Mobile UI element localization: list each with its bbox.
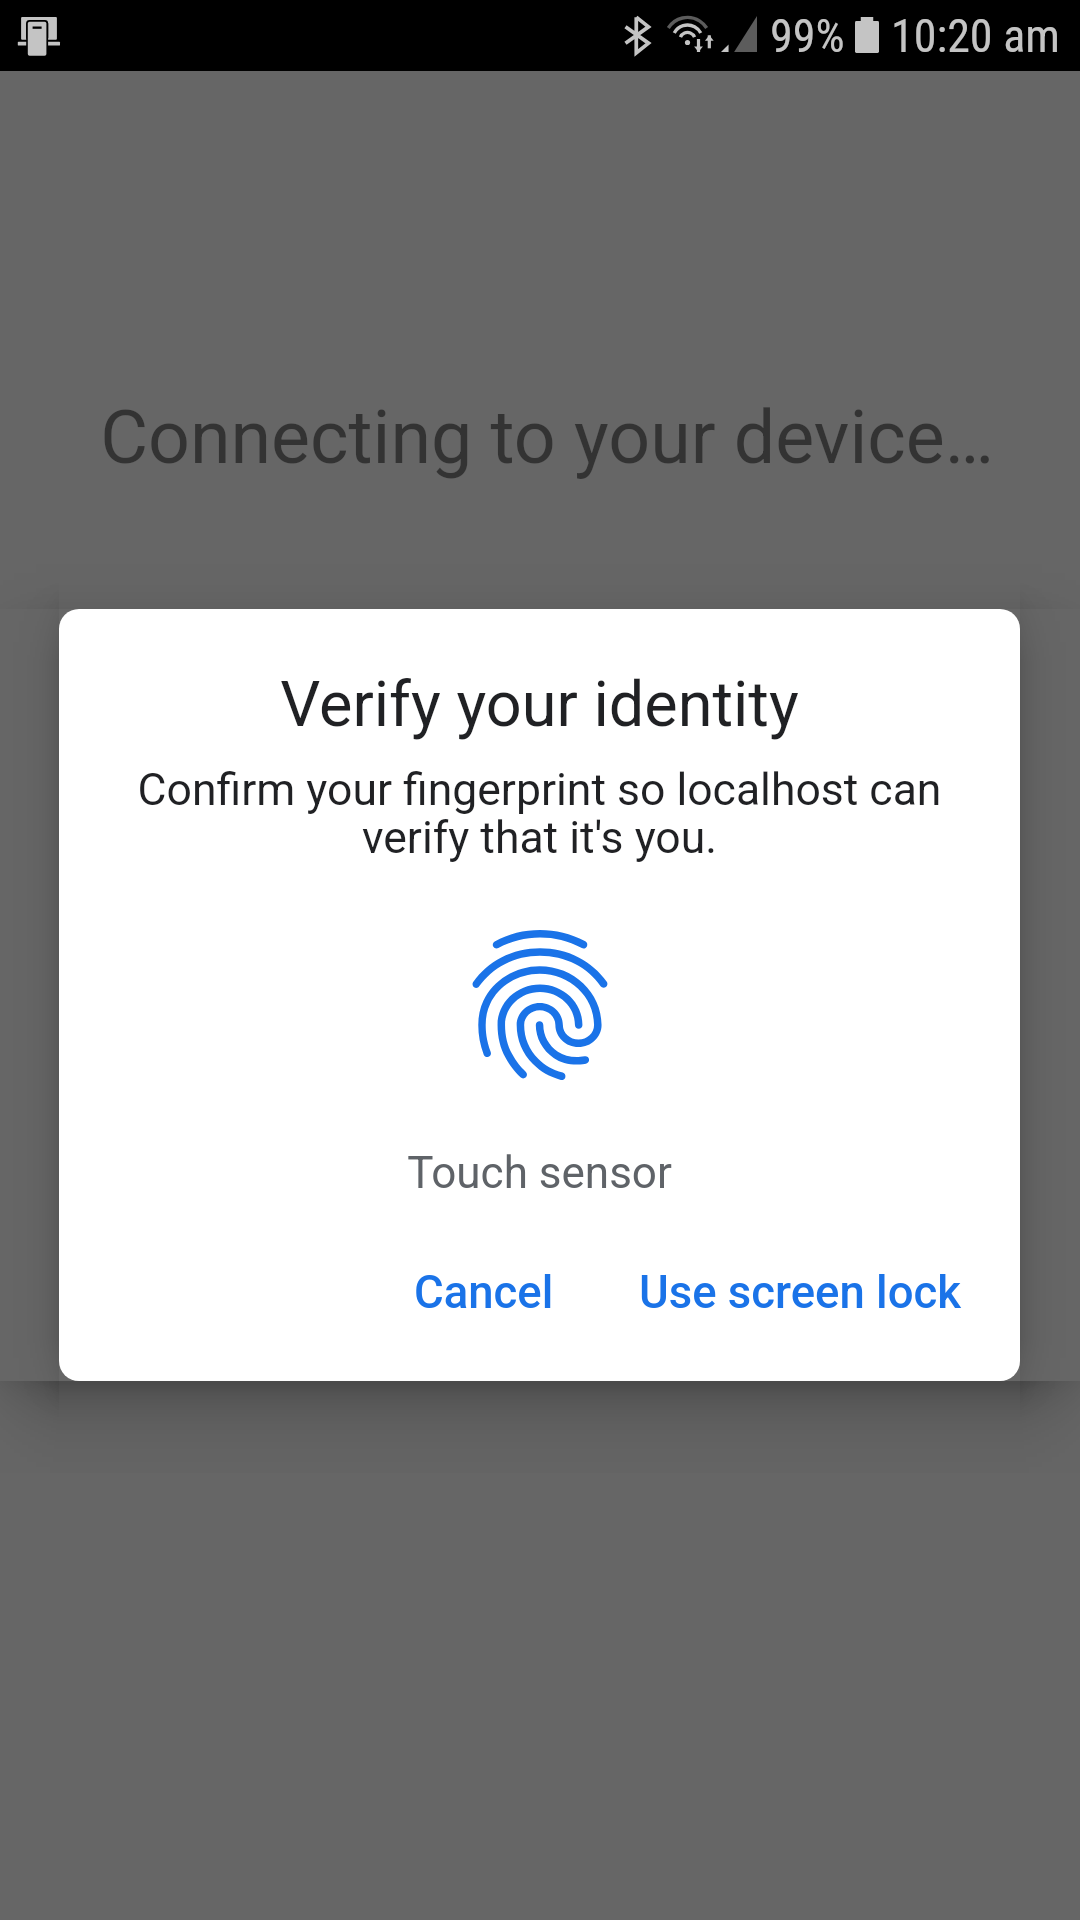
other: Bluetooth on — [625, 16, 649, 54]
staticText: Connecting to your device… — [7, 395, 1080, 481]
staticText: 99% — [770, 9, 845, 63]
staticText: Cancel — [414, 1266, 554, 1319]
staticText: Touch sensor — [59, 1147, 1020, 1199]
staticText: Use screen lock — [639, 1266, 961, 1319]
other: Battery 99 percent — [855, 17, 879, 53]
other: Fingerprint sensor — [450, 915, 630, 1095]
staticText: Confirm your fingerprint so localhost ca… — [121, 764, 958, 864]
staticText: 10:20 am — [891, 9, 1060, 63]
other: Wi-Fi connected — [663, 15, 714, 53]
other: Mobile signal — [721, 16, 757, 52]
staticText: Verify your identity — [59, 668, 1020, 742]
other: Screen mirroring — [16, 14, 62, 58]
button[interactable]: Cancel — [390, 1244, 578, 1341]
button[interactable]: Use screen lock — [615, 1244, 985, 1341]
